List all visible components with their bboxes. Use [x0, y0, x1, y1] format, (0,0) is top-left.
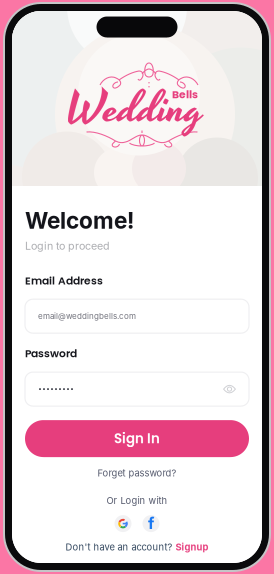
- staticText: Welcome!: [25, 207, 134, 234]
- staticText: Login to proceed: [25, 239, 110, 252]
- button[interactable]: Don't have an account?: [25, 540, 249, 554]
- staticText: Signup: [175, 541, 208, 553]
- staticText: Email Address: [25, 273, 103, 288]
- button[interactable]: Forget password?: [25, 467, 249, 479]
- button[interactable]: Sign in with Facebook: [142, 515, 159, 532]
- staticText: Or Login with: [106, 495, 167, 506]
- staticText: Password: [25, 346, 77, 361]
- button[interactable]: Sign in with Google: [114, 515, 131, 532]
- staticText: email@weddingbells.com: [38, 311, 136, 321]
- staticText: Don't have an account?: [65, 541, 172, 553]
- staticText: Forget password?: [97, 467, 176, 479]
- staticText: Sign In: [114, 429, 160, 448]
- staticText: f: [148, 514, 154, 533]
- staticText: Wedding: [66, 76, 203, 143]
- button[interactable]: Sign In: [25, 420, 249, 457]
- staticText: Bells: [172, 87, 198, 102]
